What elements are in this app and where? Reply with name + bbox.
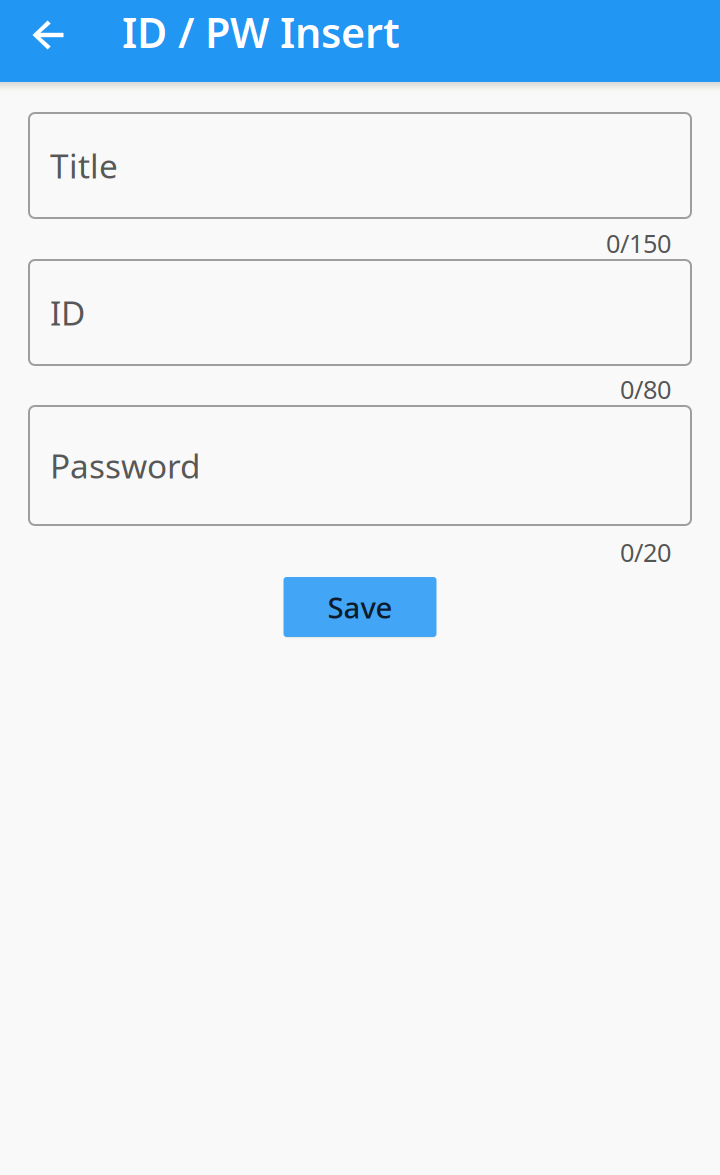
staticText: 0/20 bbox=[620, 535, 671, 569]
staticText: Password bbox=[50, 443, 201, 488]
button[interactable]: Password bbox=[29, 406, 691, 525]
staticText: Title bbox=[50, 143, 118, 188]
staticText: Save bbox=[327, 587, 392, 626]
staticText: 0/80 bbox=[620, 372, 671, 406]
staticText: ID bbox=[50, 290, 85, 335]
staticText: 0/150 bbox=[606, 226, 671, 260]
staticText: ID / PW Insert bbox=[122, 5, 400, 59]
button[interactable]: ID bbox=[29, 260, 691, 365]
button[interactable]: Title bbox=[29, 113, 691, 218]
button[interactable]: Back bbox=[0, 0, 96, 82]
button[interactable]: Save bbox=[283, 577, 436, 639]
